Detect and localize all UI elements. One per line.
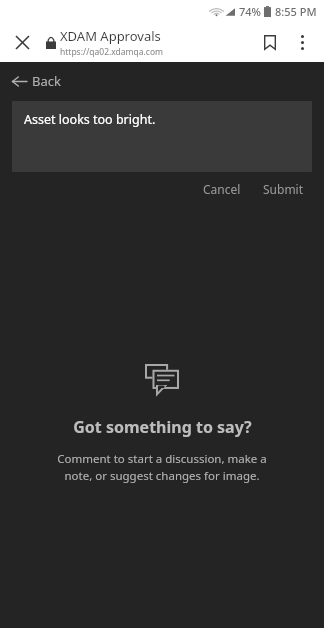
staticText: XDAM Approvals	[60, 27, 161, 45]
staticText: Got something to say?	[73, 416, 252, 438]
staticText: https://qa02.xdamqa.com	[60, 46, 164, 58]
button[interactable]: Close	[6, 26, 38, 58]
button[interactable]: Cancel	[197, 176, 247, 202]
staticText: Comment to start a discussion, make a no…	[52, 451, 272, 483]
button[interactable]: Back	[8, 68, 69, 94]
staticText: Back	[32, 72, 61, 90]
staticText: Asset looks too bright.	[24, 111, 156, 128]
button[interactable]: Asset looks too bright.	[12, 101, 312, 172]
staticText: 8:55 PM	[275, 4, 317, 19]
staticText: Cancel	[203, 181, 241, 197]
button[interactable]: XDAM Approvals	[60, 27, 164, 58]
button[interactable]: Submit	[257, 176, 310, 202]
button[interactable]: More options	[286, 26, 318, 58]
button[interactable]: Bookmark	[254, 26, 286, 58]
staticText: 74%	[239, 4, 261, 19]
staticText: Submit	[263, 181, 304, 197]
